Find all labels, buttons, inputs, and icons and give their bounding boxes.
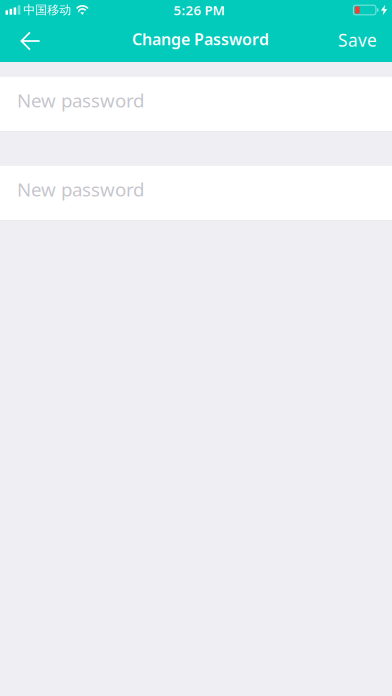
button[interactable]: Back — [0, 20, 51, 62]
staticText: 5:26 PM — [173, 1, 224, 19]
staticText: Save — [338, 28, 377, 51]
button[interactable]: New password — [0, 165, 392, 221]
button[interactable]: New password — [0, 76, 392, 132]
staticText: Change Password — [132, 28, 269, 50]
staticText: New password — [17, 88, 144, 113]
button[interactable]: Save — [330, 20, 392, 62]
staticText: 中国移动 — [23, 3, 71, 17]
staticText: New password — [17, 177, 144, 202]
